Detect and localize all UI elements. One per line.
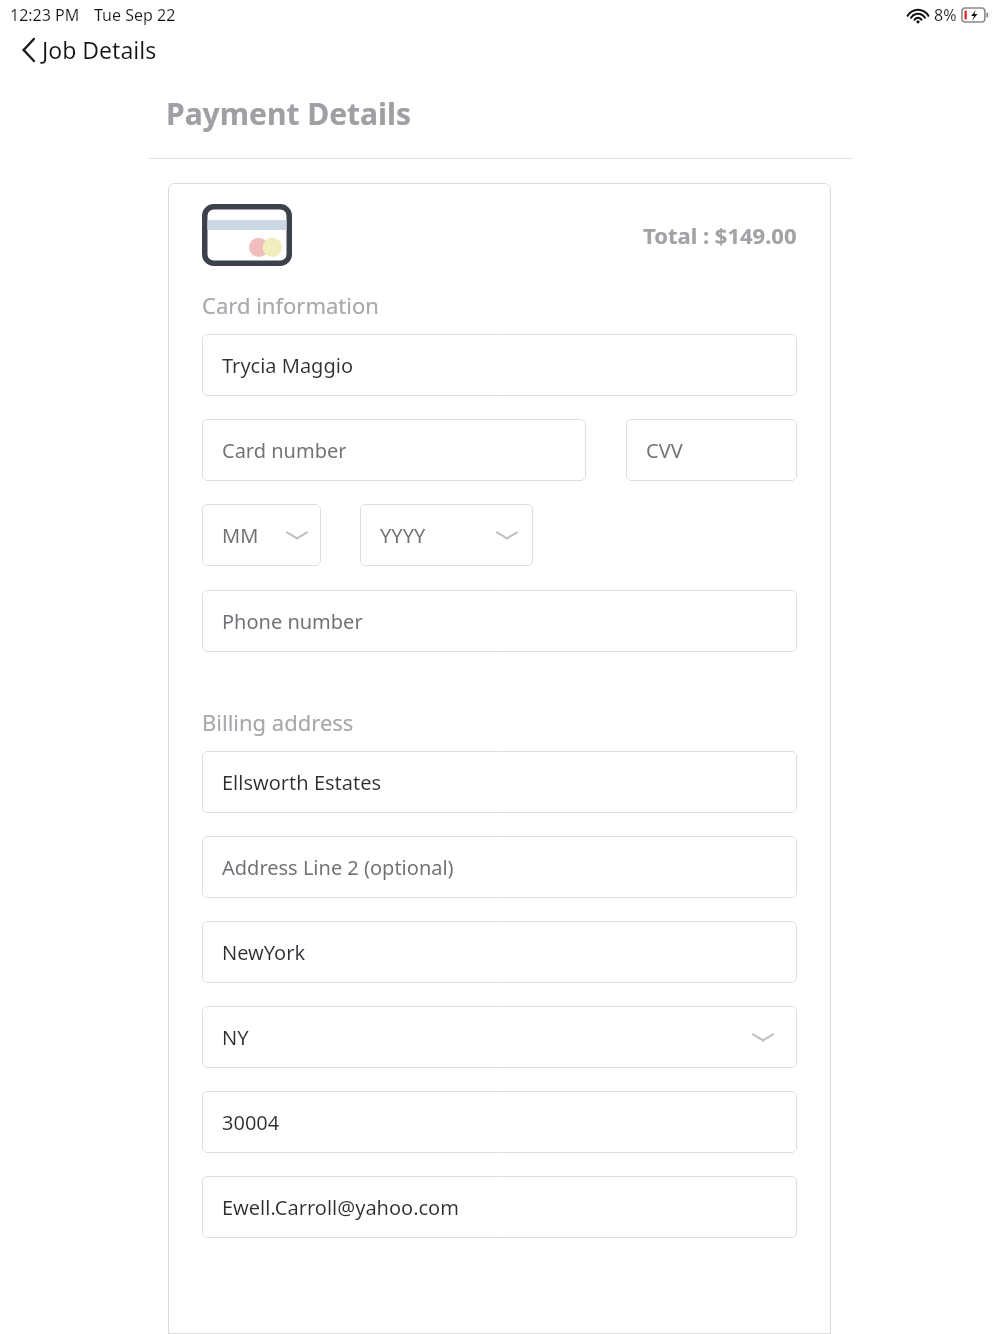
button[interactable]: Trycia Maggio <box>202 334 797 396</box>
staticText: Tue Sep 22 <box>94 4 176 26</box>
staticText: 12:23 PM <box>10 4 80 26</box>
button[interactable]: MM <box>202 504 321 566</box>
staticText: Ewell.Carroll@yahoo.com <box>222 1194 459 1221</box>
staticText: NY <box>222 1024 249 1051</box>
other: Back <box>22 37 36 63</box>
button[interactable]: NewYork <box>202 921 797 983</box>
staticText: CVV <box>646 437 683 464</box>
staticText: Trycia Maggio <box>222 352 353 379</box>
staticText: Total : $149.00 <box>643 220 797 250</box>
button[interactable]: 30004 <box>202 1091 797 1153</box>
staticText: Address Line 2 (optional) <box>222 854 454 881</box>
staticText: Phone number <box>222 608 363 635</box>
button[interactable]: YYYY <box>360 504 533 566</box>
staticText: Card information <box>202 290 379 320</box>
button[interactable]: Address Line 2 (optional) <box>202 836 797 898</box>
button[interactable]: Back <box>22 34 157 65</box>
staticText: 8% <box>934 4 957 26</box>
button[interactable]: Ewell.Carroll@yahoo.com <box>202 1176 797 1238</box>
staticText: Ellsworth Estates <box>222 769 382 796</box>
staticText: Billing address <box>202 707 354 737</box>
button[interactable]: Phone number <box>202 590 797 652</box>
staticText: MM <box>222 522 259 549</box>
staticText: YYYY <box>380 522 426 549</box>
button[interactable]: CVV <box>626 419 797 481</box>
button[interactable]: Card number <box>202 419 586 481</box>
staticText: Card number <box>222 437 347 464</box>
button[interactable]: Ellsworth Estates <box>202 751 797 813</box>
button[interactable]: NY <box>202 1006 797 1068</box>
staticText: Payment Details <box>166 93 412 134</box>
staticText: Job Details <box>42 34 157 65</box>
staticText: 30004 <box>222 1109 280 1136</box>
staticText: NewYork <box>222 939 306 966</box>
